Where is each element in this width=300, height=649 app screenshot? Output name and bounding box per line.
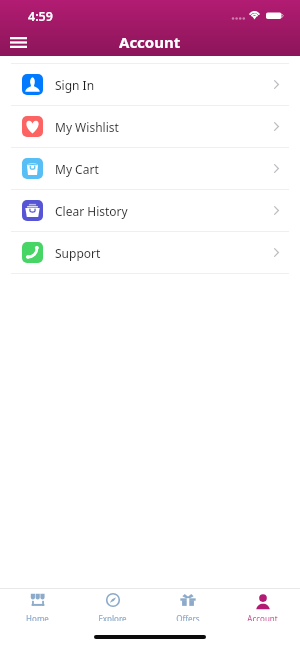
button[interactable]: Account bbox=[225, 589, 300, 621]
staticText: Home bbox=[26, 613, 49, 621]
staticText: Explore bbox=[98, 613, 127, 621]
button[interactable]: Support bbox=[0, 232, 300, 273]
staticText: Support bbox=[55, 245, 101, 261]
button[interactable]: My Cart bbox=[0, 148, 300, 189]
staticText: Account bbox=[119, 32, 181, 52]
staticText: Sign In bbox=[55, 77, 95, 93]
staticText: My Wishlist bbox=[55, 119, 119, 135]
button[interactable]: Menu bbox=[5, 29, 32, 56]
button[interactable]: Explore bbox=[75, 589, 150, 621]
staticText: Clear History bbox=[55, 203, 128, 219]
staticText: My Cart bbox=[55, 161, 99, 177]
button[interactable]: My Wishlist bbox=[0, 106, 300, 147]
staticText: Offers bbox=[176, 613, 200, 621]
staticText: Account bbox=[247, 613, 278, 621]
button[interactable]: Clear History bbox=[0, 190, 300, 231]
button[interactable]: Offers bbox=[150, 589, 225, 621]
button[interactable]: Home bbox=[0, 589, 75, 621]
button[interactable]: Sign In bbox=[0, 64, 300, 105]
staticText: 4:59 bbox=[28, 8, 53, 25]
